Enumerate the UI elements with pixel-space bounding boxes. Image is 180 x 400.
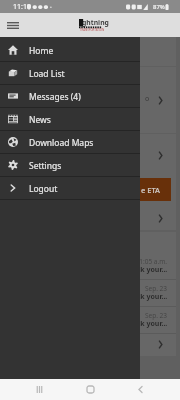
staticText: heck your... bbox=[128, 319, 168, 329]
button[interactable]: Open navigation drawer bbox=[0, 13, 26, 37]
button[interactable]: Home bbox=[79, 379, 101, 400]
button[interactable]: Settings bbox=[0, 154, 140, 176]
staticText: heck your... bbox=[128, 292, 168, 302]
staticText: Logout bbox=[29, 183, 58, 195]
staticText: heck your... bbox=[128, 265, 168, 275]
button[interactable]: Back bbox=[129, 379, 151, 400]
staticText: 1:05 a.m. bbox=[0, 257, 167, 266]
button[interactable]: News bbox=[0, 108, 140, 130]
staticText: Load List bbox=[29, 68, 65, 80]
button[interactable] bbox=[0, 20, 176, 66]
staticText: ightning bbox=[80, 18, 110, 27]
staticText: Download Maps bbox=[29, 137, 94, 149]
staticText: News bbox=[29, 114, 51, 126]
staticText: Messages (4) bbox=[29, 91, 81, 103]
staticText: Settings bbox=[29, 160, 62, 172]
staticText: TRANSPORTATION bbox=[80, 28, 110, 32]
button[interactable]: Recents bbox=[28, 379, 50, 400]
staticText: Sep. 23 bbox=[0, 284, 167, 293]
staticText: 11:15 bbox=[13, 2, 31, 12]
button[interactable]: Home bbox=[0, 39, 140, 61]
button[interactable]: Download Maps bbox=[0, 131, 140, 153]
button[interactable]: Logout bbox=[0, 177, 140, 199]
button[interactable]: e ETA bbox=[0, 134, 176, 230]
staticText: o bbox=[145, 94, 150, 104]
staticText: e ETA bbox=[141, 185, 161, 195]
staticText: Home bbox=[29, 45, 54, 57]
button[interactable]: Load List bbox=[0, 62, 140, 84]
button[interactable]: e ETA bbox=[140, 178, 171, 201]
staticText: 87% bbox=[153, 3, 165, 11]
button[interactable]: Messages (4) bbox=[0, 85, 140, 107]
button[interactable]: 1:05 a.m. bbox=[0, 232, 176, 356]
button[interactable]: o bbox=[0, 67, 176, 133]
staticText: Sep. 23 bbox=[0, 311, 167, 320]
